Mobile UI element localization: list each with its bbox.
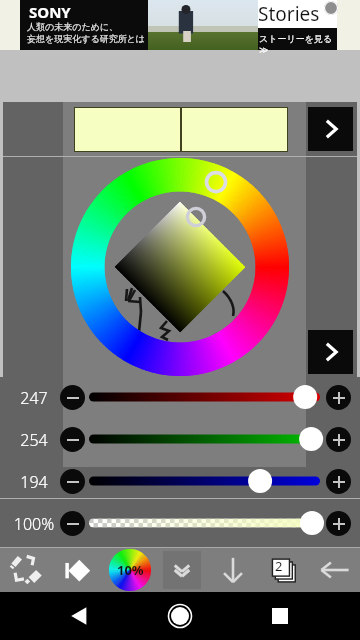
button[interactable]: Back [56,592,104,640]
button[interactable]: Layers [258,548,309,592]
button[interactable]: Save image [207,548,258,592]
staticText: 人類の未来のために、 [27,21,119,32]
button[interactable]: Undo [309,548,360,592]
button[interactable]: Hide panel [156,548,207,592]
button[interactable]: Increase opacity [326,511,351,536]
button[interactable]: Opacity value [84,502,325,544]
staticText: 10% [117,561,144,579]
button[interactable]: Decrease Blue [60,469,85,494]
button[interactable]: Next palette [308,107,353,151]
staticText: 247 [0,387,68,409]
button[interactable]: Decrease opacity [60,511,85,536]
staticText: 100% [0,513,68,535]
staticText: 妄想を現実化する研究所とは [27,33,146,44]
button[interactable]: Advertisement [0,0,360,50]
staticText: 2 [275,557,283,575]
staticText: SONY [29,2,71,22]
button[interactable]: Colour and opacity [104,548,156,592]
button[interactable]: Blue value [84,460,325,502]
button[interactable]: Current colour [74,107,288,152]
button[interactable]: Increase Green [326,427,351,452]
staticText: 194 [0,471,68,493]
button[interactable]: Red value [84,376,325,418]
button[interactable]: More options [308,330,353,374]
button[interactable]: Green value [84,418,325,460]
button[interactable]: Decrease Red [60,385,85,410]
button[interactable]: Recent apps [256,592,304,640]
button[interactable]: Increase Red [326,385,351,410]
button[interactable]: Brush shape [52,548,104,592]
staticText: Stories [258,1,320,27]
button[interactable]: Home [156,592,204,640]
button[interactable]: Ad info [324,1,338,15]
staticText: 254 [0,429,68,451]
button[interactable]: Decrease Green [60,427,85,452]
staticText: ストーリーを見る≫ [259,33,338,55]
button[interactable]: Increase Blue [326,469,351,494]
button[interactable]: Swap brush and eraser [0,548,52,592]
